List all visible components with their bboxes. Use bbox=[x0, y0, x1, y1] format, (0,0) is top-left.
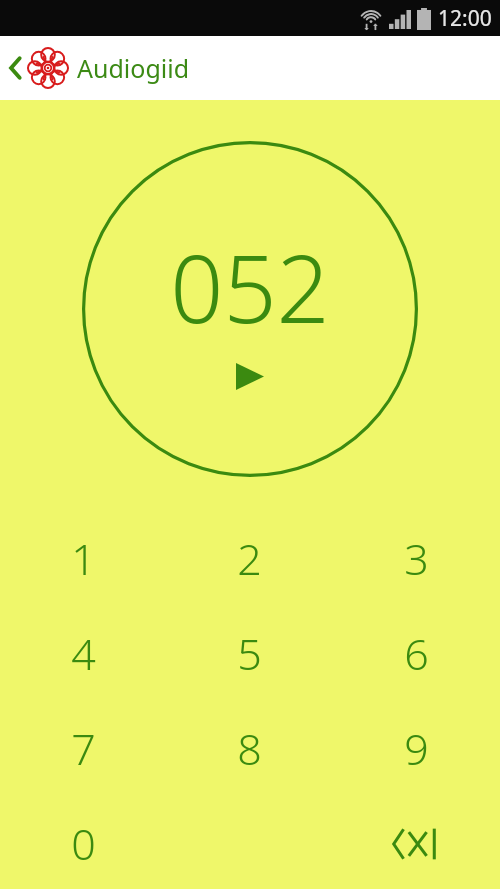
staticText: 0 bbox=[71, 814, 96, 873]
staticText: 12:00 bbox=[438, 4, 492, 33]
button[interactable]: 1 bbox=[0, 511, 166, 606]
button[interactable]: 0 bbox=[0, 796, 166, 889]
button[interactable]: 3 bbox=[333, 511, 500, 606]
button[interactable]: 2 bbox=[166, 511, 333, 606]
button[interactable]: Back bbox=[2, 46, 28, 90]
staticText: 8 bbox=[237, 719, 262, 778]
staticText: Audiogiid bbox=[77, 51, 190, 85]
staticText: 1 bbox=[71, 529, 96, 588]
button[interactable]: 6 bbox=[333, 606, 500, 701]
staticText: 052 bbox=[170, 224, 330, 351]
button[interactable]: 4 bbox=[0, 606, 166, 701]
staticText: 4 bbox=[71, 624, 96, 683]
button[interactable]: 5 bbox=[166, 606, 333, 701]
button[interactable]: 9 bbox=[333, 701, 500, 796]
staticText: 3 bbox=[404, 529, 429, 588]
button[interactable]: 8 bbox=[166, 701, 333, 796]
button[interactable]: 7 bbox=[0, 701, 166, 796]
staticText: 5 bbox=[237, 624, 262, 683]
button[interactable]: 052 bbox=[82, 141, 418, 477]
staticText: 6 bbox=[404, 624, 429, 683]
staticText: 9 bbox=[404, 719, 429, 778]
staticText: 2 bbox=[237, 529, 262, 588]
button[interactable]: Backspace bbox=[333, 796, 500, 889]
staticText: 7 bbox=[71, 719, 96, 778]
